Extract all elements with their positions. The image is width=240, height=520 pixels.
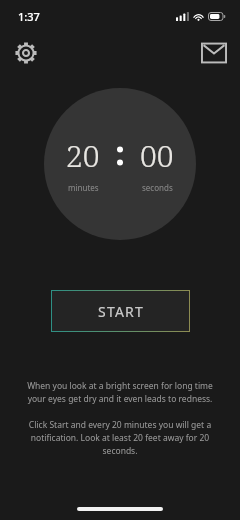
button[interactable]: Settings xyxy=(8,35,44,71)
staticText: When you look at a bright screen for lon… xyxy=(18,380,222,405)
staticText: Click Start and every 20 minutes you wil… xyxy=(18,419,222,457)
staticText: minutes xyxy=(68,182,99,193)
button[interactable]: 20 xyxy=(44,88,196,240)
staticText: 1:37 xyxy=(18,9,40,24)
staticText: seconds xyxy=(142,182,173,193)
staticText: START xyxy=(98,302,144,321)
button[interactable]: Mail xyxy=(196,35,232,71)
button[interactable]: START xyxy=(52,291,189,331)
staticText: 00 xyxy=(140,135,174,176)
staticText: 20 xyxy=(66,135,100,176)
